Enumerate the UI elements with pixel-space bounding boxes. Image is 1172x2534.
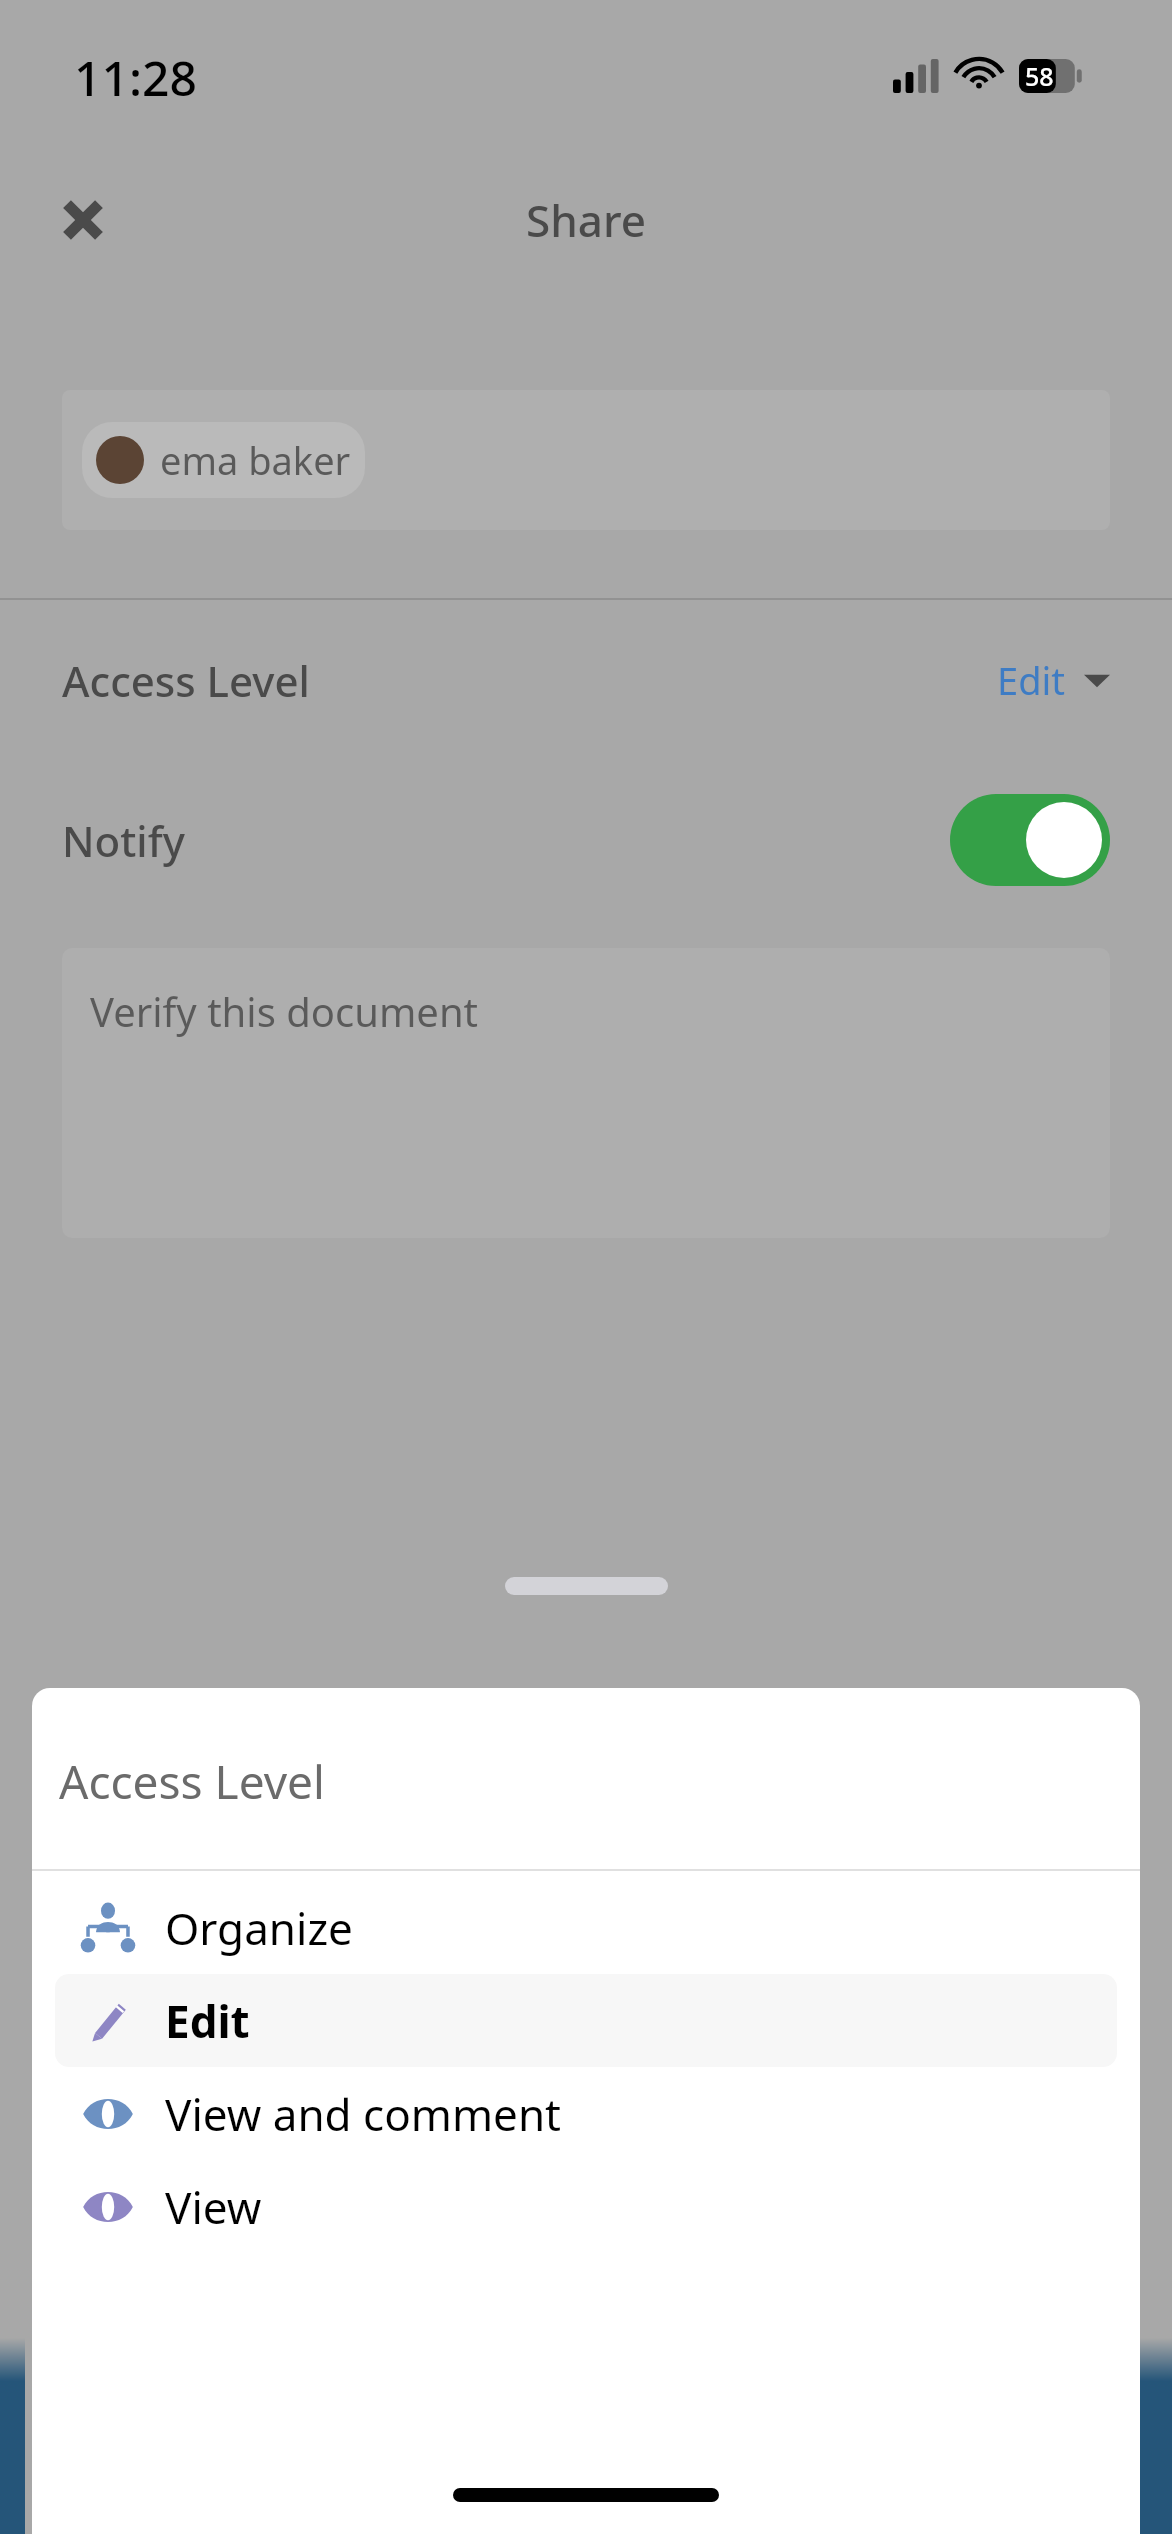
staticText: 11:28 bbox=[74, 45, 197, 110]
staticText: Organize bbox=[165, 1898, 353, 1958]
staticText: Access Level bbox=[62, 652, 310, 709]
staticText: ema baker bbox=[160, 434, 351, 486]
other: Edit bbox=[81, 1994, 135, 2048]
button[interactable]: Close bbox=[62, 199, 104, 241]
staticText: 58 bbox=[1025, 59, 1054, 93]
staticText: Notify bbox=[62, 812, 185, 869]
staticText: Verify this document bbox=[90, 984, 479, 1038]
button[interactable]: View bbox=[55, 2067, 1117, 2160]
other: Organize bbox=[81, 1901, 135, 1955]
other: View bbox=[81, 2180, 135, 2234]
button[interactable]: Organize bbox=[55, 1881, 1117, 1974]
staticText: Edit bbox=[997, 654, 1066, 706]
other: View bbox=[81, 2087, 135, 2141]
staticText: Access Level bbox=[59, 1750, 325, 1813]
staticText: Share bbox=[526, 190, 646, 250]
staticText: View and comment bbox=[165, 2084, 561, 2144]
staticText: View bbox=[165, 2177, 262, 2237]
button[interactable]: Edit bbox=[55, 1974, 1117, 2067]
button[interactable]: View bbox=[55, 2160, 1117, 2253]
staticText: Edit bbox=[165, 1991, 250, 2051]
